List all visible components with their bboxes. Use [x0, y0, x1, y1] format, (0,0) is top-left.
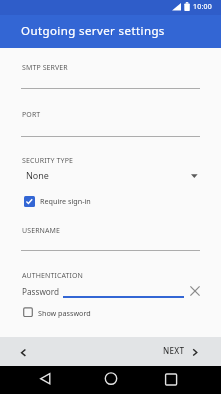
button[interactable] — [62, 286, 183, 297]
staticText: Password — [22, 286, 60, 297]
button[interactable]: NEXT — [153, 337, 213, 366]
button[interactable] — [157, 366, 185, 394]
staticText: 10:00 — [193, 2, 212, 12]
staticText: PORT — [22, 110, 41, 120]
staticText: AUTHENTICATION — [22, 271, 84, 281]
staticText: Require sign-in — [40, 196, 91, 206]
button[interactable]: None — [21, 166, 200, 185]
button[interactable] — [31, 366, 59, 394]
staticText: SMTP SERVER — [22, 63, 68, 73]
button[interactable]: Require sign-in — [19, 192, 139, 211]
button[interactable]: Show password — [18, 303, 138, 322]
button[interactable] — [96, 366, 124, 394]
staticText: SECURITY TYPE — [22, 156, 73, 166]
staticText: NEXT — [163, 345, 185, 356]
staticText: Outgoing server settings — [21, 23, 165, 39]
staticText: None — [26, 169, 49, 181]
staticText: USERNAME — [22, 226, 61, 236]
button[interactable] — [8, 337, 40, 366]
staticText: Show password — [38, 308, 91, 318]
button[interactable] — [186, 282, 204, 300]
